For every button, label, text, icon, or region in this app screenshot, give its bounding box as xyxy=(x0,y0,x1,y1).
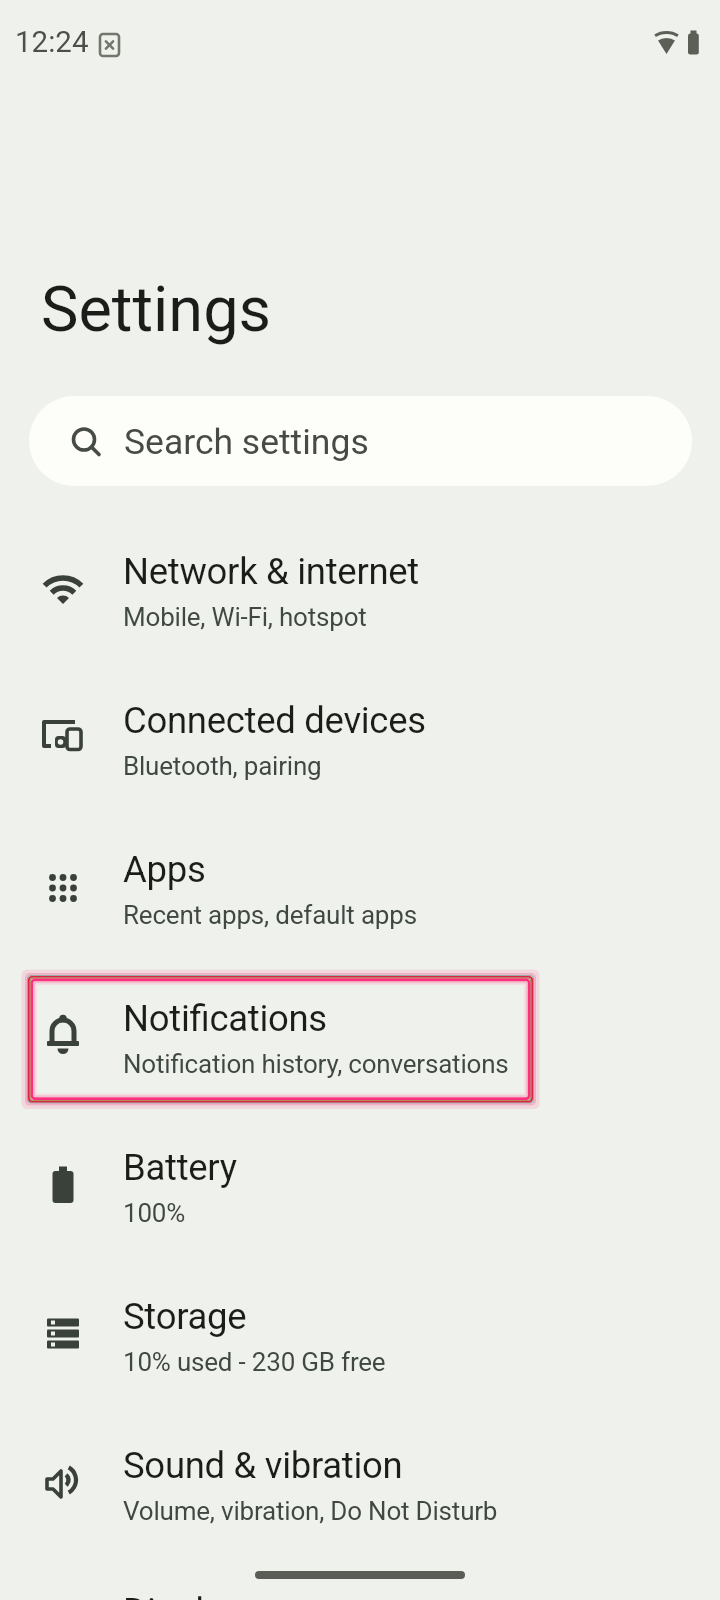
staticText: Recent apps, default apps xyxy=(123,900,417,930)
staticText: Bluetooth, pairing xyxy=(123,751,322,781)
button[interactable]: Search settings xyxy=(29,396,692,486)
button[interactable]: Battery xyxy=(0,1115,720,1264)
staticText: Notification history, conversations xyxy=(123,1049,509,1079)
button[interactable]: Notifications xyxy=(0,966,720,1115)
staticText: 100% xyxy=(123,1198,186,1228)
staticText: Connected devices xyxy=(123,699,426,742)
staticText: Mobile, Wi-Fi, hotspot xyxy=(123,602,367,632)
staticText: Battery xyxy=(123,1146,237,1189)
staticText: Search settings xyxy=(124,421,369,463)
staticText: Apps xyxy=(123,848,206,891)
staticText: Notifications xyxy=(123,997,327,1040)
staticText: Volume, vibration, Do Not Disturb xyxy=(123,1496,498,1526)
staticText: Network & internet xyxy=(123,550,420,593)
button[interactable]: Sound & vibration xyxy=(0,1413,720,1562)
staticText: 10% used - 230 GB free xyxy=(123,1347,386,1377)
staticText: 12:24 xyxy=(15,25,89,60)
button[interactable]: Apps xyxy=(0,817,720,966)
button[interactable]: Connected devices xyxy=(0,668,720,817)
staticText: Settings xyxy=(41,273,272,347)
button[interactable]: Network & internet xyxy=(0,519,720,668)
button[interactable]: Storage xyxy=(0,1264,720,1413)
staticText: Sound & vibration xyxy=(123,1444,403,1487)
staticText: Display xyxy=(123,1590,241,1600)
staticText: Storage xyxy=(123,1295,247,1338)
